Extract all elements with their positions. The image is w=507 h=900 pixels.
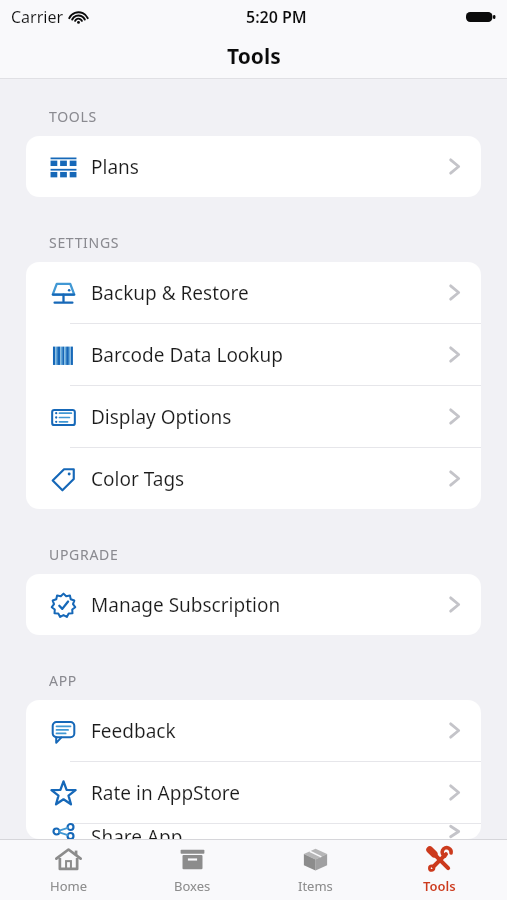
other: Display Options [50,404,77,431]
button[interactable]: Feedback [26,700,481,761]
staticText: Share App [91,824,183,839]
button[interactable]: Plans [26,136,481,197]
other: Barcode Data Lookup [50,342,77,369]
staticText: Feedback [91,718,176,744]
other: Backup & Restore [50,280,77,307]
staticText: 5:20 PM [246,6,307,28]
other: Manage Subscription [50,592,77,619]
other: Share App [50,824,77,839]
button[interactable]: Tools [384,840,494,900]
staticText: Carrier [11,6,64,28]
other: Plans [50,154,77,181]
staticText: Rate in AppStore [91,780,241,806]
button[interactable]: Manage Subscription [26,574,481,635]
staticText: Display Options [91,404,232,430]
staticText: Barcode Data Lookup [91,342,283,368]
button[interactable]: Share App [26,824,481,839]
staticText: UPGRADE [49,545,119,564]
other: Boxes [179,846,206,873]
other: Tools [426,846,453,873]
staticText: Boxes [174,877,211,895]
other: Home [55,846,82,873]
staticText: Items [298,877,333,895]
button[interactable]: Items [260,840,370,900]
staticText: Manage Subscription [91,592,281,618]
button[interactable]: Home [13,840,123,900]
staticText: APP [49,671,77,690]
button[interactable]: Display Options [26,386,481,447]
other: Color Tags [50,466,77,493]
button[interactable]: Backup & Restore [26,262,481,323]
staticText: Tools [227,42,281,71]
staticText: Backup & Restore [91,280,249,306]
button[interactable]: Boxes [137,840,247,900]
staticText: Plans [91,154,139,180]
other: Rate in AppStore [50,780,77,807]
staticText: Home [50,877,87,895]
staticText: TOOLS [49,107,97,126]
staticText: SETTINGS [49,233,120,252]
staticText: Color Tags [91,466,185,492]
button[interactable]: Barcode Data Lookup [26,324,481,385]
staticText: Tools [423,877,456,895]
button[interactable]: Rate in AppStore [26,762,481,823]
other: Items [302,846,329,873]
button[interactable]: Color Tags [26,448,481,509]
other: Feedback [50,718,77,745]
